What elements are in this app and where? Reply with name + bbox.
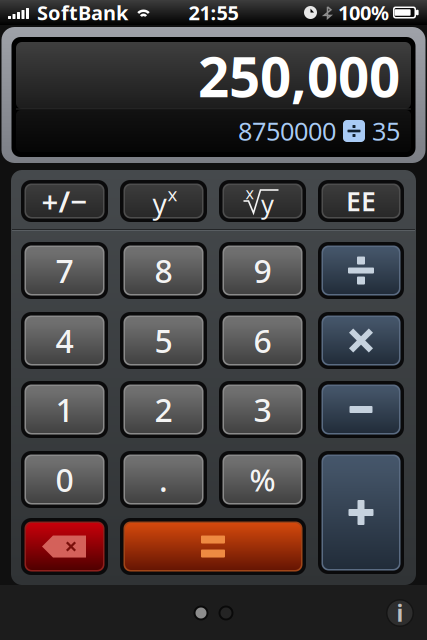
staticText: 35 (372, 114, 400, 148)
staticText: 8750000 (238, 114, 336, 148)
staticText: 7 (55, 249, 73, 292)
staticText: y (152, 184, 166, 222)
staticText: i (396, 598, 403, 628)
button[interactable]: 4 (21, 312, 108, 369)
button[interactable]: 2 (120, 381, 207, 438)
button[interactable]: Subtract (318, 381, 404, 438)
staticText: 5 (154, 319, 172, 362)
button[interactable]: % (219, 451, 306, 508)
staticText: 1 (55, 388, 73, 431)
button[interactable]: Multiply (318, 312, 404, 369)
staticText: EE (346, 183, 376, 219)
button[interactable]: 5 (120, 312, 207, 369)
staticText: +/− (41, 181, 87, 220)
staticText: 100% (338, 0, 389, 26)
staticText: 8 (154, 249, 172, 292)
button[interactable]: 6 (219, 312, 306, 369)
button[interactable]: . (120, 451, 207, 508)
staticText: % (249, 459, 275, 500)
button[interactable]: Info (385, 598, 415, 628)
button[interactable]: 1 (21, 381, 108, 438)
button[interactable]: x-th root of y (219, 180, 306, 222)
button[interactable]: 8 (120, 242, 207, 299)
staticText: 2 (154, 388, 172, 431)
staticText: 0 (55, 458, 73, 501)
button[interactable]: 3 (219, 381, 306, 438)
staticText: x (245, 182, 253, 204)
staticText: 4 (55, 319, 73, 362)
button[interactable]: Add (318, 451, 404, 574)
staticText: 250,000 (198, 40, 400, 112)
staticText: 9 (253, 249, 271, 292)
staticText: y (261, 187, 274, 221)
staticText: 21:55 (188, 0, 238, 26)
button[interactable]: 9 (219, 242, 306, 299)
staticText: 3 (253, 388, 271, 431)
button[interactable]: y to the power of x (120, 180, 207, 222)
button[interactable]: Divide (318, 242, 404, 299)
staticText: SoftBank (37, 0, 128, 26)
button[interactable]: 0 (21, 451, 108, 508)
staticText: . (159, 458, 168, 501)
staticText: x (167, 182, 177, 206)
button[interactable]: Delete (21, 518, 108, 575)
button[interactable]: EE (318, 180, 404, 222)
staticText: 6 (253, 319, 271, 362)
button[interactable]: +/− (21, 180, 108, 222)
button[interactable]: 7 (21, 242, 108, 299)
button[interactable]: Equals (120, 518, 306, 575)
